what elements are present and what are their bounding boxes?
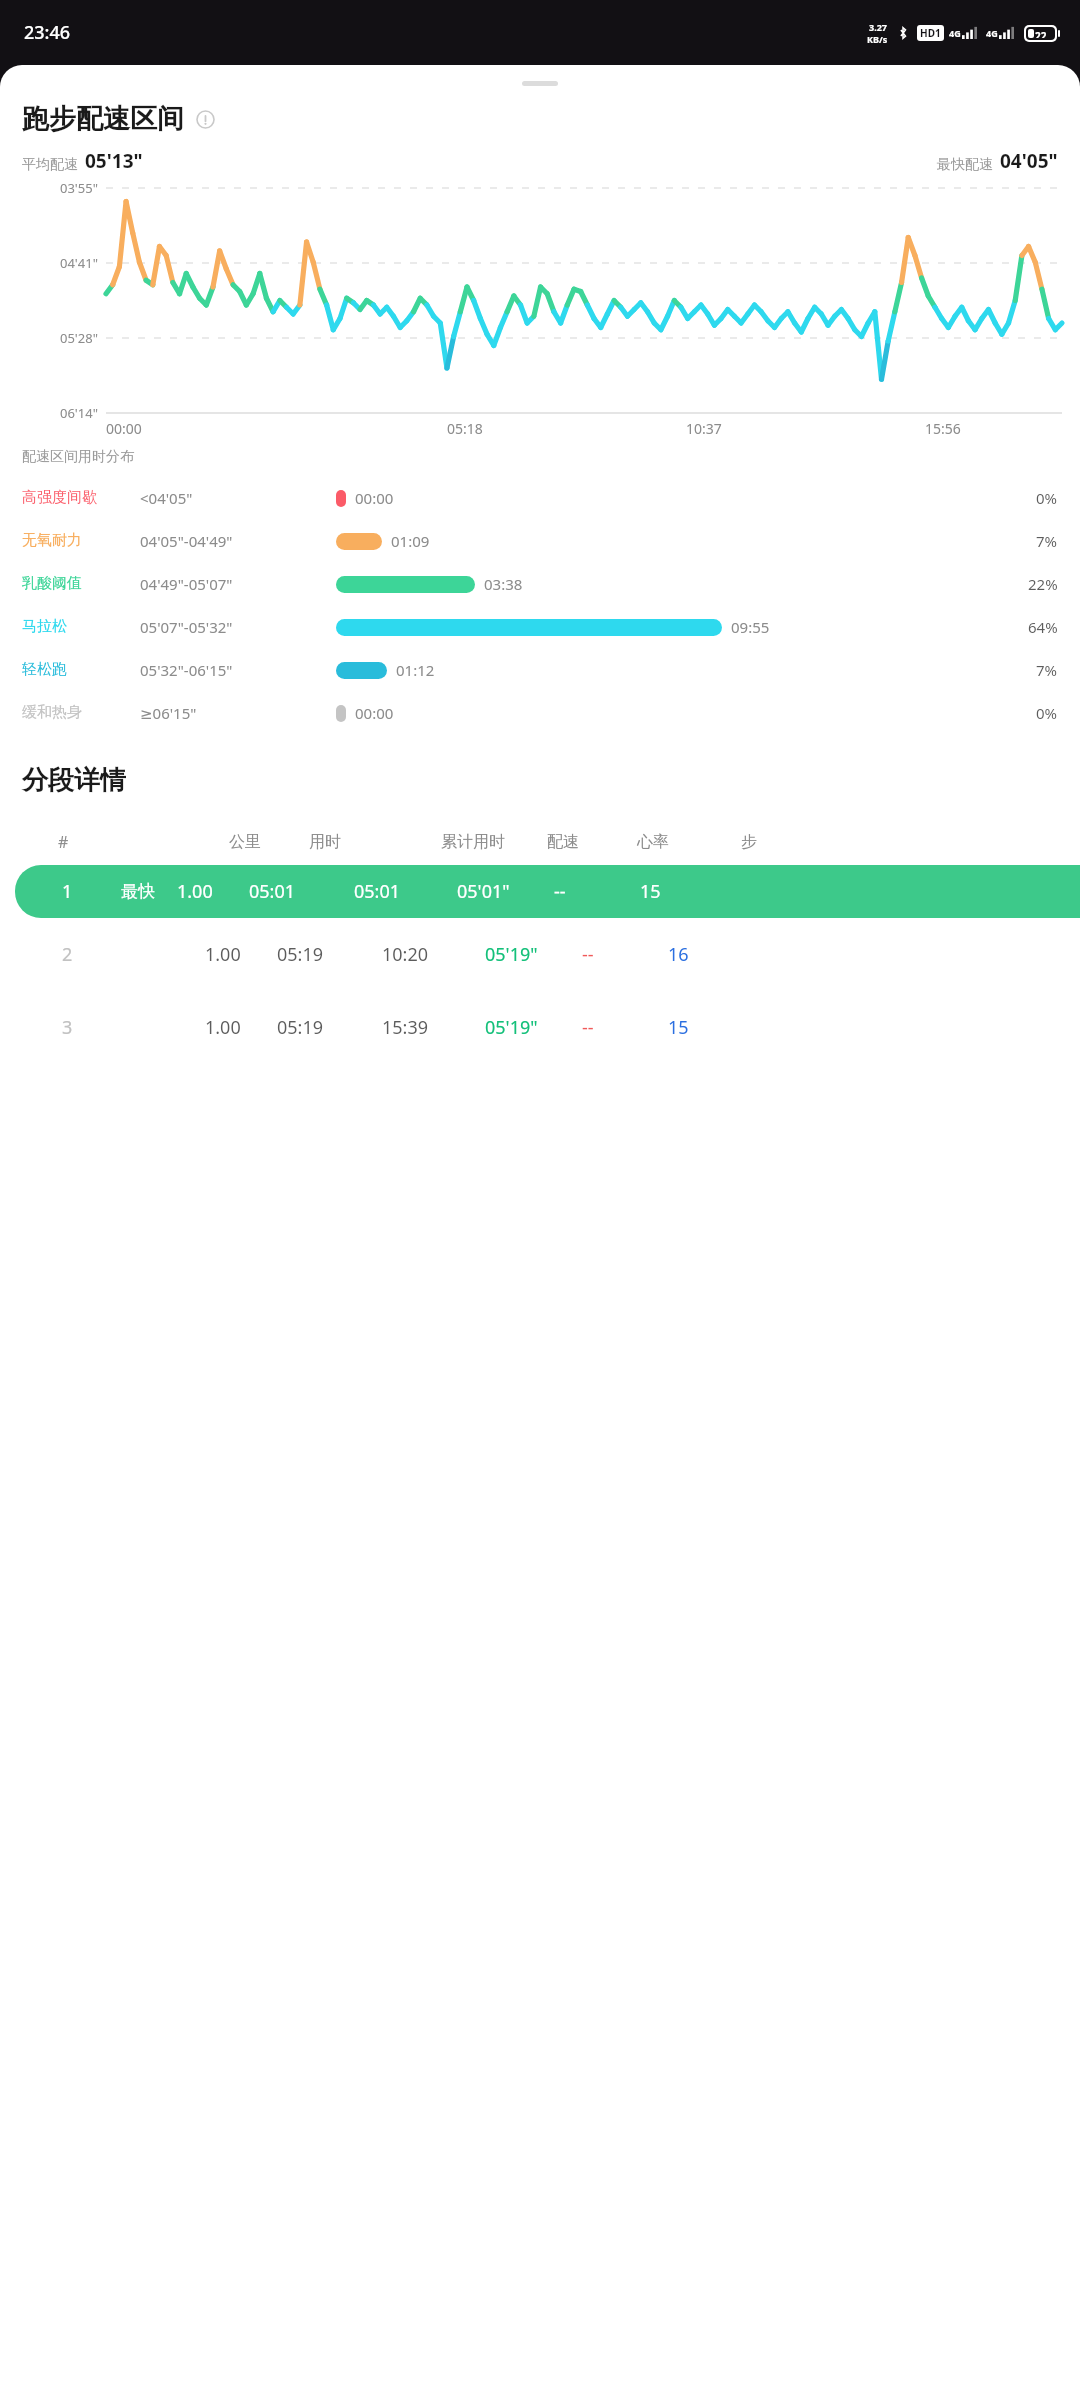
staticText: 15	[668, 1015, 689, 1040]
staticText: 05'01"	[457, 879, 510, 904]
staticText: 05'19"	[485, 942, 538, 967]
button[interactable]: 轻松跑	[0, 648, 1080, 691]
staticText: 05:18	[447, 419, 483, 438]
staticText: 心率	[637, 832, 669, 852]
staticText: 23:46	[24, 20, 71, 45]
staticText: 05'07"-05'32"	[140, 617, 233, 637]
staticText: 累计用时	[441, 832, 505, 852]
staticText: 05'19"	[485, 1015, 538, 1040]
staticText: 最快配速	[937, 156, 993, 174]
button[interactable]: 说明	[194, 108, 216, 130]
staticText: #	[58, 831, 69, 853]
staticText: 高强度间歇	[22, 488, 97, 507]
staticText: 03:38	[484, 574, 523, 594]
button[interactable]: 马拉松	[0, 605, 1080, 648]
staticText: --	[582, 942, 594, 967]
staticText: 00:00	[106, 419, 142, 438]
staticText: 4G	[986, 27, 998, 39]
staticText: 配速	[547, 832, 579, 852]
staticText: ≥06'15"	[140, 703, 197, 723]
button[interactable]: 无氧耐力	[0, 519, 1080, 562]
staticText: KB/s	[867, 33, 888, 45]
button[interactable]: 乳酸阈值	[0, 562, 1080, 605]
staticText: 15:56	[925, 419, 961, 438]
button[interactable]: 1	[0, 865, 1080, 918]
staticText: 2	[62, 942, 73, 967]
staticText: 22%	[1028, 574, 1058, 594]
staticText: 05:01	[249, 879, 296, 904]
staticText: 00:00	[355, 488, 394, 508]
staticText: HD1	[920, 26, 941, 40]
staticText: 04'05"-04'49"	[140, 531, 233, 551]
staticText: 05'32"-06'15"	[140, 660, 233, 680]
staticText: 步	[741, 832, 757, 852]
staticText: 3	[62, 1015, 73, 1040]
staticText: 最快	[121, 881, 155, 902]
button[interactable]: 3	[0, 991, 1080, 1064]
staticText: 1.00	[177, 879, 213, 904]
staticText: 乳酸阈值	[22, 574, 82, 593]
staticText: --	[582, 1015, 594, 1040]
staticText: 00:00	[355, 703, 394, 723]
staticText: 06'14"	[60, 404, 98, 422]
button[interactable]: 2	[0, 918, 1080, 991]
button[interactable]: 缓和热身	[0, 691, 1080, 734]
staticText: 05:01	[354, 879, 401, 904]
staticText: 平均配速	[22, 156, 78, 174]
staticText: 10:37	[686, 419, 722, 438]
staticText: 05:19	[277, 942, 324, 967]
staticText: 7%	[1036, 531, 1058, 551]
staticText: 7%	[1036, 660, 1058, 680]
staticText: 03'55"	[60, 179, 98, 197]
staticText: 用时	[309, 832, 341, 852]
staticText: 04'05"	[1000, 148, 1058, 174]
staticText: 15:39	[382, 1015, 429, 1040]
staticText: <04'05"	[140, 488, 193, 508]
button[interactable]: 高强度间歇	[0, 476, 1080, 519]
staticText: 05:19	[277, 1015, 324, 1040]
staticText: 马拉松	[22, 617, 67, 636]
staticText: 22	[1035, 29, 1047, 38]
staticText: 分段详情	[22, 764, 126, 797]
staticText: 04'49"-05'07"	[140, 574, 233, 594]
staticText: 64%	[1028, 617, 1058, 637]
staticText: 0%	[1036, 488, 1058, 508]
staticText: 05'13"	[85, 148, 143, 174]
staticText: 10:20	[382, 942, 429, 967]
staticText: 1.00	[205, 942, 241, 967]
staticText: 4G	[949, 27, 961, 39]
staticText: 01:12	[396, 660, 435, 680]
staticText: 1	[62, 879, 73, 904]
staticText: 轻松跑	[22, 660, 67, 679]
staticText: 无氧耐力	[22, 531, 82, 550]
staticText: 跑步配速区间	[22, 102, 184, 136]
staticText: 缓和热身	[22, 703, 82, 722]
staticText: 公里	[229, 832, 261, 852]
staticText: 05'28"	[60, 329, 98, 347]
staticText: 3.27	[869, 21, 887, 33]
staticText: 04'41"	[60, 254, 98, 272]
staticText: 09:55	[731, 617, 770, 637]
staticText: 0%	[1036, 703, 1058, 723]
staticText: 01:09	[391, 531, 430, 551]
staticText: 16	[668, 942, 689, 967]
staticText: 15	[640, 879, 661, 904]
staticText: --	[554, 879, 566, 904]
staticText: 1.00	[205, 1015, 241, 1040]
staticText: 配速区间用时分布	[22, 448, 134, 466]
